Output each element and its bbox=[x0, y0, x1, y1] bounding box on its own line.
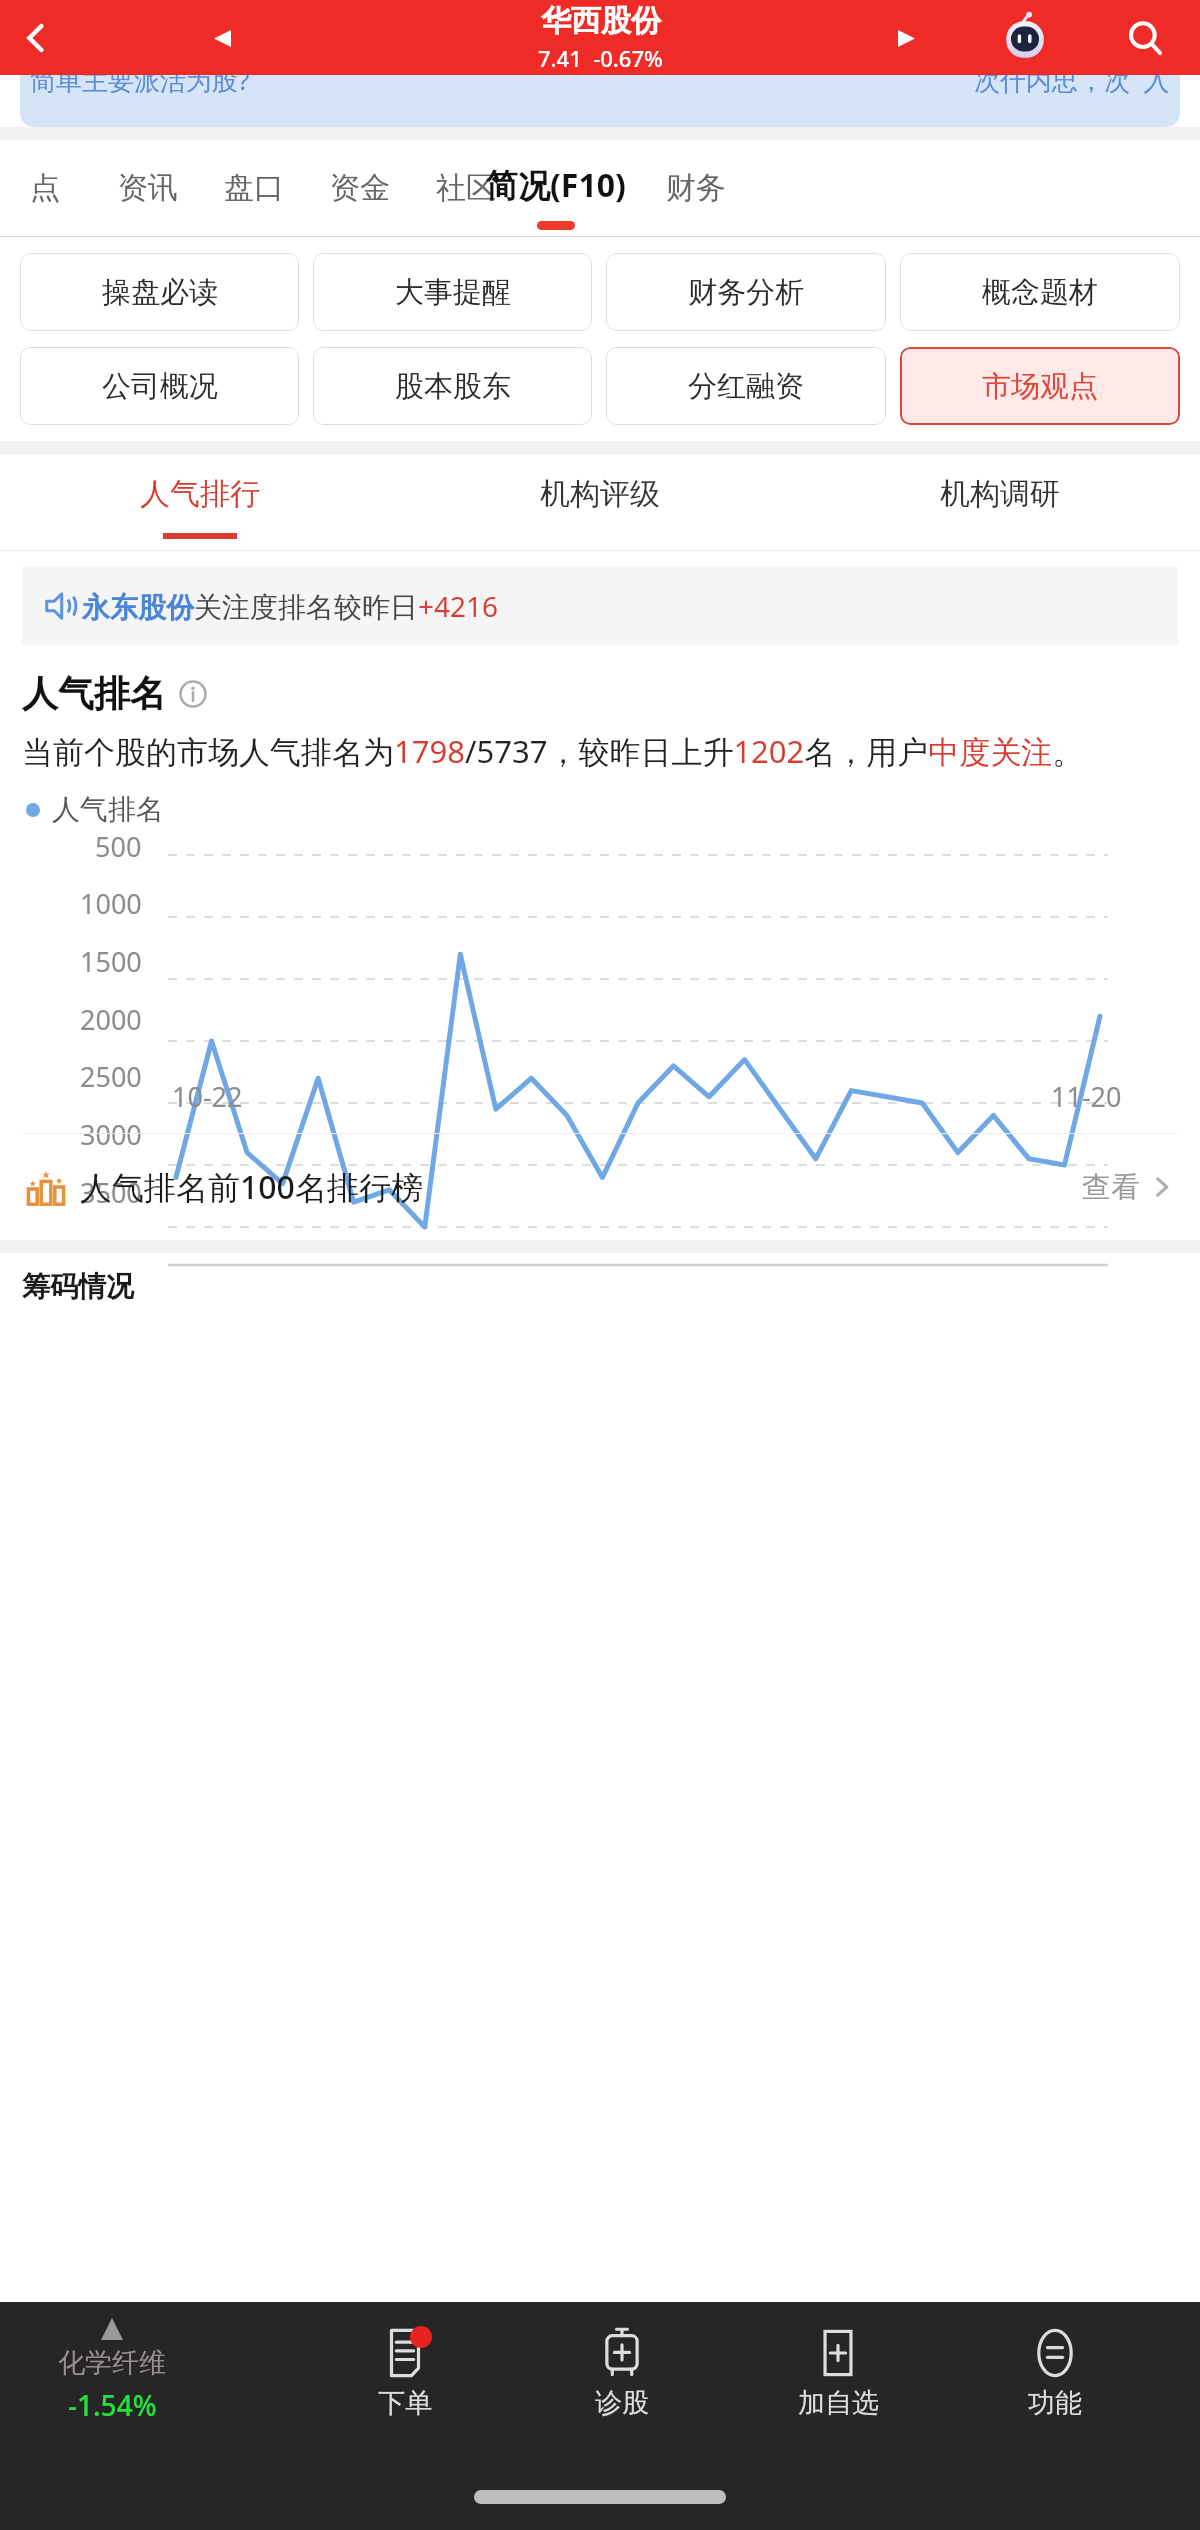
staticText: 机构调研 bbox=[940, 475, 1060, 513]
staticText: 财务 bbox=[666, 169, 726, 207]
staticText: 资金 bbox=[330, 169, 390, 207]
staticText: 10-22 bbox=[172, 1078, 243, 1115]
button[interactable]: Back bbox=[8, 10, 64, 66]
button[interactable]: Previous stock bbox=[196, 12, 248, 64]
staticText: 股本股东 bbox=[395, 368, 511, 405]
staticText: 操盘必读 bbox=[102, 274, 218, 311]
button[interactable]: 操盘必读 bbox=[20, 253, 299, 331]
staticText: 人气排名前100名排行榜 bbox=[80, 1165, 423, 1209]
staticText: 盘口 bbox=[224, 169, 284, 207]
staticText: 下单 bbox=[378, 2386, 432, 2420]
staticText: 1000 bbox=[80, 885, 142, 922]
button[interactable]: Search bbox=[1114, 7, 1176, 69]
button[interactable]: 概念题材 bbox=[900, 253, 1180, 331]
staticText: 简况(F10) bbox=[486, 163, 626, 207]
staticText: 永东股份关注度排名较昨日+4216 bbox=[82, 587, 499, 625]
staticText: 人气排名 bbox=[22, 671, 166, 716]
staticText: 化学纤维 bbox=[58, 2346, 166, 2380]
staticText: 人气排名 bbox=[52, 792, 164, 827]
staticText: 2500 bbox=[80, 1058, 142, 1095]
staticText: 诊股 bbox=[595, 2386, 649, 2420]
staticText: 3000 bbox=[80, 1116, 142, 1153]
staticText: 大事提醒 bbox=[395, 274, 511, 311]
staticText: -1.54% bbox=[68, 2386, 157, 2424]
button[interactable]: 简况(F10) bbox=[466, 140, 646, 236]
staticText: 概念题材 bbox=[982, 274, 1098, 311]
button[interactable]: 人气排行 bbox=[0, 454, 400, 550]
staticText: 11-20 bbox=[1051, 1078, 1122, 1115]
button[interactable]: 点 bbox=[10, 140, 80, 236]
staticText: 华西股份 bbox=[541, 2, 661, 40]
staticText: 次什内忠，次 入 bbox=[974, 75, 1170, 98]
button[interactable]: Next stock bbox=[880, 12, 932, 64]
staticText: 当前个股的市场人气排名为1798/5737，较昨日上升1202名，用户中度关注。 bbox=[22, 730, 1084, 772]
button[interactable]: 机构调研 bbox=[800, 454, 1200, 550]
button[interactable]: 股本股东 bbox=[313, 347, 592, 425]
button[interactable]: Info bbox=[178, 679, 208, 709]
staticText: 分红融资 bbox=[688, 368, 804, 405]
staticText: 7.41 -0.67% bbox=[538, 43, 663, 73]
staticText: 2000 bbox=[80, 1001, 142, 1038]
staticText: 简单主要派活为股? bbox=[30, 75, 250, 98]
staticText: 市场观点 bbox=[982, 368, 1098, 405]
staticText: 人气排行 bbox=[140, 475, 260, 513]
button[interactable]: 诊股 bbox=[547, 2326, 697, 2420]
button[interactable]: 功能 bbox=[980, 2326, 1130, 2420]
button[interactable]: AI assistant bbox=[994, 7, 1056, 69]
button[interactable]: 财务分析 bbox=[606, 253, 886, 331]
button[interactable]: 分红融资 bbox=[606, 347, 886, 425]
button[interactable]: 加自选 bbox=[763, 2326, 913, 2420]
button[interactable]: 人气排名前100名排行榜 bbox=[0, 1134, 1200, 1240]
button[interactable]: 简单主要派活为股? bbox=[20, 75, 1180, 127]
button[interactable]: 大事提醒 bbox=[313, 253, 592, 331]
button[interactable]: 盘口 bbox=[206, 140, 302, 236]
button[interactable]: 社区 bbox=[418, 140, 514, 236]
button[interactable]: 化学纤维 bbox=[58, 2318, 166, 2424]
button[interactable]: 公司概况 bbox=[20, 347, 299, 425]
staticText: 点 bbox=[30, 169, 60, 207]
button[interactable]: 市场观点 bbox=[900, 347, 1180, 425]
staticText: 筹码情况 bbox=[22, 1269, 134, 1304]
button[interactable]: 下单 bbox=[330, 2326, 480, 2420]
staticText: 1500 bbox=[80, 943, 142, 980]
staticText: 加自选 bbox=[798, 2386, 879, 2420]
staticText: 财务分析 bbox=[688, 274, 804, 311]
button[interactable]: 财务 bbox=[648, 140, 744, 236]
staticText: 公司概况 bbox=[102, 368, 218, 405]
button[interactable]: 永东股份关注度排名较昨日+4216 bbox=[22, 567, 1178, 645]
staticText: 机构评级 bbox=[540, 475, 660, 513]
staticText: 500 bbox=[95, 828, 142, 865]
staticText: 资讯 bbox=[118, 169, 178, 207]
staticText: 功能 bbox=[1028, 2386, 1082, 2420]
staticText: 社区 bbox=[436, 169, 496, 207]
staticText: 3500 bbox=[80, 1174, 142, 1211]
button[interactable]: 资讯 bbox=[100, 140, 196, 236]
button[interactable]: 机构评级 bbox=[400, 454, 800, 550]
staticText: 查看 bbox=[1082, 1169, 1140, 1206]
button[interactable]: 资金 bbox=[312, 140, 408, 236]
